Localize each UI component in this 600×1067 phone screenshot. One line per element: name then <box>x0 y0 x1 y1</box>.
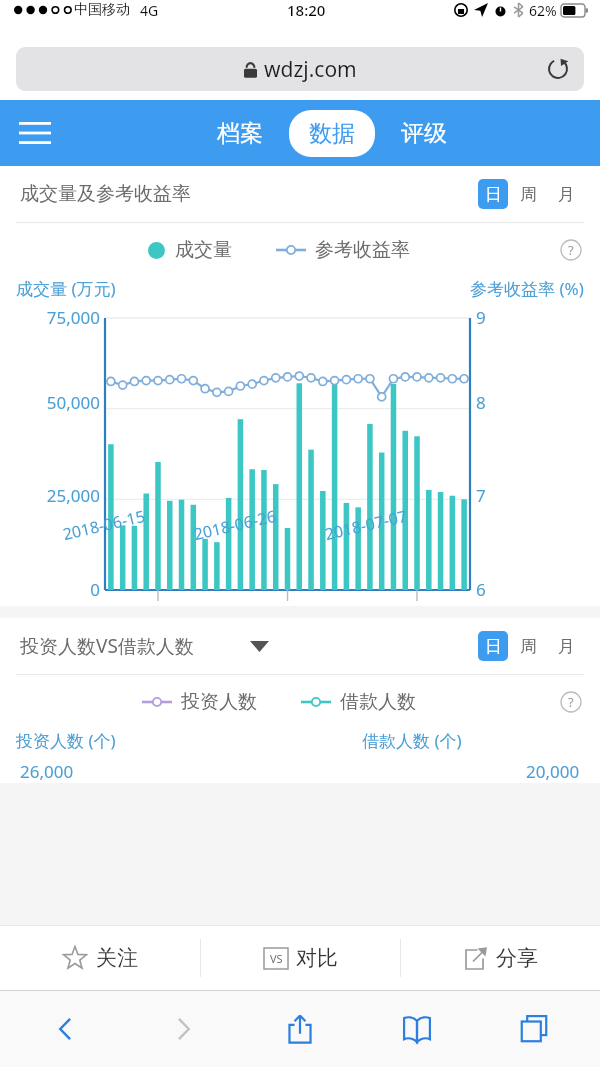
button[interactable]: Reload <box>542 53 574 85</box>
staticText: 借款人数 (个) <box>362 729 462 752</box>
staticText: wdzj.com <box>264 55 357 84</box>
staticText: 分享 <box>496 945 538 971</box>
button[interactable]: 借款人数 <box>301 690 416 714</box>
staticText: 成交量 (万元) <box>16 277 116 300</box>
staticText: 2018-06-15 <box>61 505 147 545</box>
staticText: 月 <box>558 636 575 657</box>
staticText: 数据 <box>309 119 355 148</box>
button[interactable]: 档案 <box>217 119 263 148</box>
staticText: ? <box>568 693 574 711</box>
button[interactable]: 参考收益率 <box>276 238 410 262</box>
button[interactable]: 分享 <box>401 926 600 990</box>
button[interactable]: wdzj.com <box>16 47 584 91</box>
button[interactable]: Help <box>558 237 584 263</box>
button[interactable]: 评级 <box>401 119 447 148</box>
staticText: 6 <box>476 578 486 601</box>
button[interactable]: 月 <box>548 179 584 209</box>
staticText: 50,000 <box>16 391 100 414</box>
button[interactable]: Menu <box>12 110 58 156</box>
staticText: 7 <box>476 484 486 507</box>
staticText: 月 <box>558 184 575 205</box>
button[interactable]: 关注 <box>0 926 200 990</box>
button[interactable]: 周 <box>508 179 548 209</box>
button[interactable]: 周 <box>508 631 548 661</box>
staticText: 投资人数VS借款人数 <box>20 633 194 659</box>
staticText: 日 <box>485 636 502 657</box>
staticText: 对比 <box>296 945 338 971</box>
staticText: 成交量及参考收益率 <box>20 182 191 206</box>
staticText: 9 <box>476 306 486 329</box>
button[interactable]: VS <box>201 926 400 990</box>
button[interactable]: 日 <box>478 179 508 209</box>
staticText: 参考收益率 <box>315 238 410 262</box>
button[interactable]: Forward <box>124 991 241 1067</box>
staticText: 18:20 <box>287 0 326 20</box>
staticText: 20,000 <box>526 760 580 783</box>
staticText: 参考收益率 (%) <box>470 277 584 300</box>
staticText: 2018-07-07 <box>323 505 409 545</box>
staticText: 投资人数 <box>181 690 257 714</box>
staticText: 成交量 <box>175 238 232 262</box>
button[interactable]: Share <box>241 991 358 1067</box>
button[interactable]: 日 <box>478 631 508 661</box>
staticText: 周 <box>520 636 537 657</box>
staticText: 周 <box>520 184 537 205</box>
staticText: 75,000 <box>16 306 100 329</box>
staticText: 26,000 <box>20 760 74 783</box>
staticText: 62% <box>529 1 557 20</box>
staticText: 评级 <box>401 119 447 148</box>
staticText: 投资人数 (个) <box>16 729 116 752</box>
staticText: 中国移动 <box>74 1 130 19</box>
button[interactable]: 数据 <box>309 119 355 148</box>
staticText: 借款人数 <box>340 690 416 714</box>
button[interactable]: Tabs <box>475 991 592 1067</box>
staticText: ? <box>568 241 574 259</box>
staticText: 0 <box>16 578 100 601</box>
button[interactable]: 成交量 <box>148 238 232 262</box>
button[interactable]: Select metric <box>244 631 274 661</box>
button[interactable]: Back <box>8 991 124 1067</box>
staticText: 25,000 <box>16 484 100 507</box>
staticText: 日 <box>485 184 502 205</box>
staticText: 档案 <box>217 119 263 148</box>
button[interactable]: 投资人数 <box>142 690 257 714</box>
staticText: VS <box>270 951 283 966</box>
staticText: 8 <box>476 391 486 414</box>
staticText: 2018-06-26 <box>192 505 278 545</box>
staticText: 关注 <box>96 945 138 971</box>
staticText: 4G <box>140 1 159 20</box>
button[interactable]: Help <box>558 689 584 715</box>
button[interactable]: Bookmarks <box>358 991 475 1067</box>
button[interactable]: 月 <box>548 631 584 661</box>
